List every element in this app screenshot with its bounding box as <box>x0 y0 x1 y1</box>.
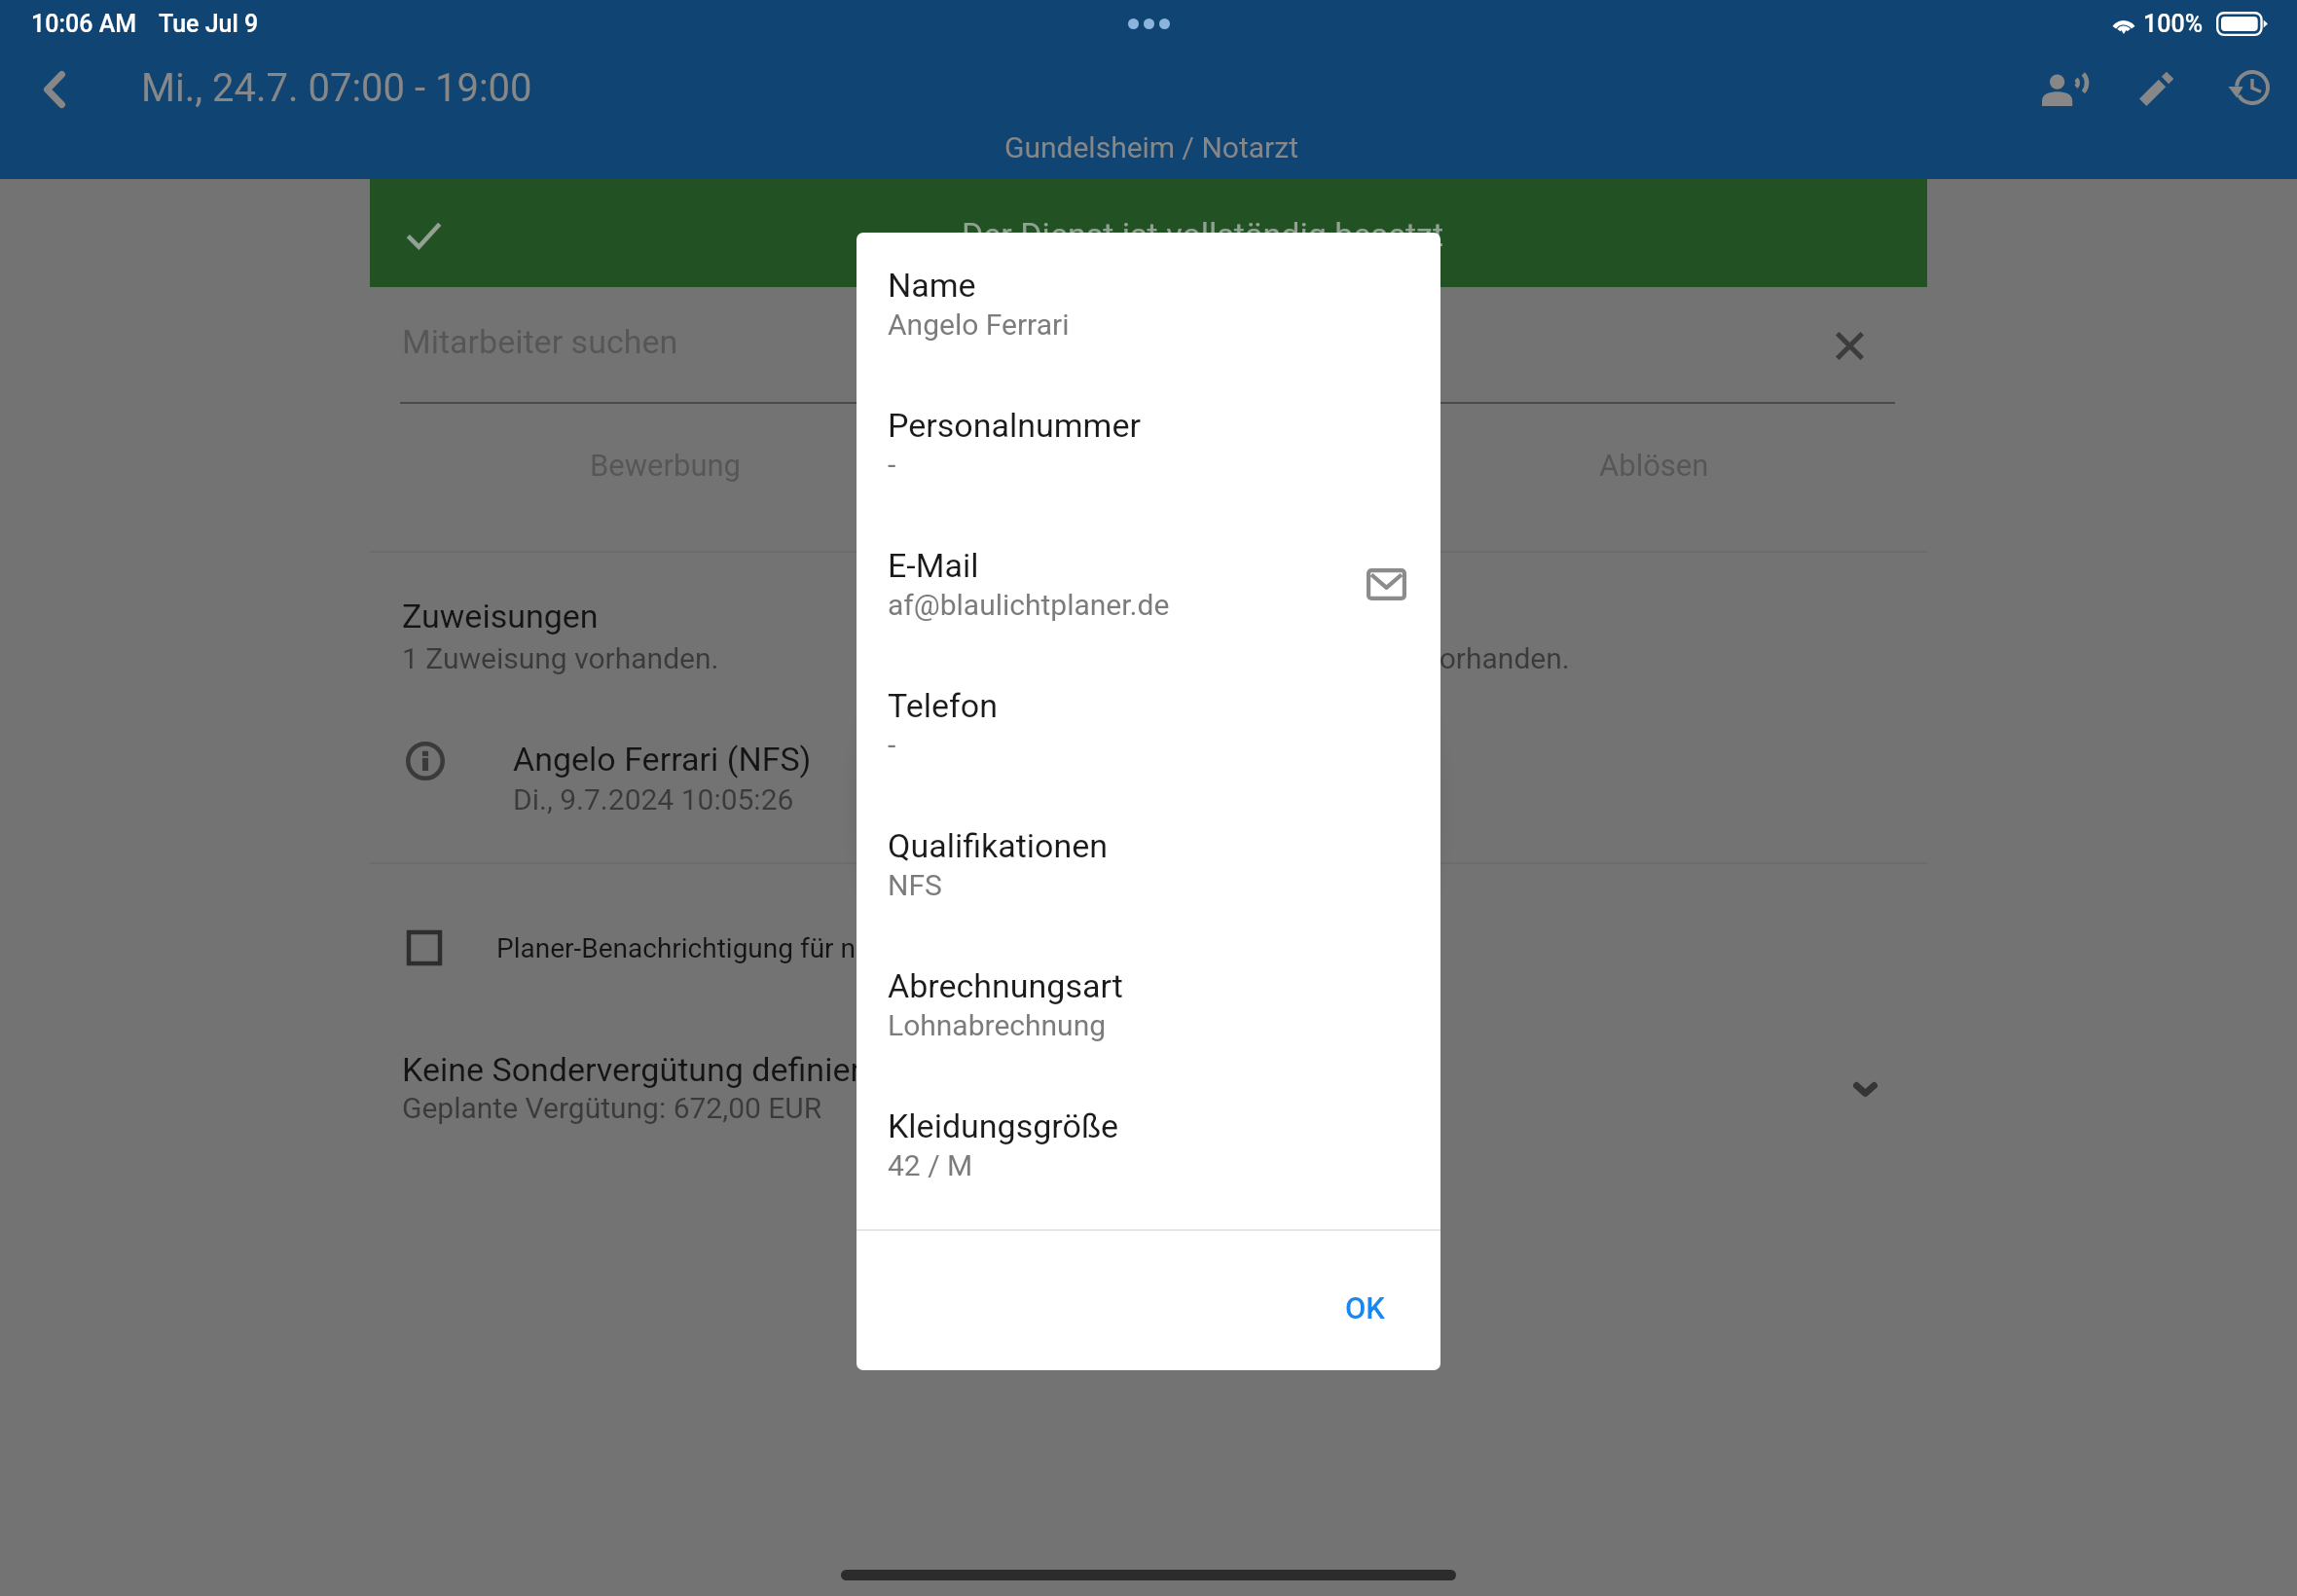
button[interactable]: Back <box>14 49 95 130</box>
staticText: Ablösen <box>1599 448 1709 483</box>
staticText: Qualifikationen <box>888 826 1109 865</box>
staticText: OK <box>1345 1290 1385 1325</box>
button[interactable]: Kleidungsgröße <box>857 1106 1440 1227</box>
staticText: Personalnummer <box>888 406 1141 445</box>
button[interactable]: Name <box>857 266 1440 386</box>
staticText: NFS <box>888 868 942 902</box>
staticText: - <box>888 728 896 762</box>
button[interactable]: Planer-Benachrichtigung für nächsten Die… <box>380 900 1548 997</box>
button[interactable]: Send email <box>1345 543 1427 625</box>
staticText: Di., 9.7.2024 10:05:26 <box>513 782 794 816</box>
staticText: Gundelsheim / Notarzt <box>1004 130 1298 164</box>
button[interactable]: Qualifikationen <box>857 826 1440 947</box>
button[interactable]: OK <box>1303 1269 1426 1347</box>
staticText: Angelo Ferrari (NFS) <box>513 740 812 779</box>
staticText: Kleidungsgröße <box>888 1106 1119 1145</box>
staticText: Keine Zuweisung vorhanden. <box>1197 641 1570 675</box>
button[interactable]: Bewerbung <box>402 412 1148 538</box>
staticText: af@blaulichtplaner.de <box>888 588 1170 622</box>
button[interactable]: Ablösen <box>1148 412 1895 538</box>
staticText: 42 / M <box>888 1148 973 1182</box>
staticText: E-Mail <box>888 546 979 585</box>
button[interactable]: Telefon <box>857 686 1440 807</box>
staticText: 1 Zuweisung vorhanden. <box>402 641 719 675</box>
staticText: Keine Sondervergütung definiert <box>402 1050 873 1089</box>
button[interactable]: Der Dienst ist vollständig besetzt <box>370 179 1927 287</box>
button[interactable]: History <box>2208 47 2290 128</box>
button[interactable]: Keine Sondervergütung definiert <box>370 1012 1927 1168</box>
staticText: 100% <box>2143 10 2204 38</box>
staticText: Zuweisungen <box>402 597 599 635</box>
button[interactable]: Personalnummer <box>857 406 1440 526</box>
button[interactable]: Clear search <box>1808 305 1890 386</box>
button[interactable]: Angelo Ferrari (NFS) <box>389 720 1148 827</box>
staticText: Mitarbeiter suchen <box>402 322 678 361</box>
staticText: Geplante Vergütung: 672,00 EUR <box>402 1091 822 1125</box>
button[interactable]: Abrechnungsart <box>857 966 1440 1087</box>
button[interactable]: Notify employees <box>2023 47 2104 128</box>
button[interactable]: Expand <box>1824 1048 1906 1130</box>
staticText: Telefon <box>888 686 998 725</box>
button[interactable]: E-Mail <box>857 546 1440 667</box>
button[interactable]: Edit <box>2116 47 2198 128</box>
staticText: Tue Jul 9 <box>159 10 259 38</box>
staticText: Mi., 24.7. 07:00 - 19:00 <box>141 65 532 111</box>
staticText: Lohnabrechnung <box>888 1008 1107 1042</box>
staticText: - <box>888 448 896 482</box>
staticText: Angelo Ferrari <box>888 308 1070 342</box>
staticText: Planer-Benachrichtigung für nächsten Die… <box>496 932 1076 964</box>
staticText: 10:06 AM <box>31 10 137 38</box>
staticText: Name <box>888 266 976 305</box>
staticText: Abrechnungsart <box>888 966 1123 1005</box>
staticText: Der Dienst ist vollständig besetzt <box>962 215 1444 254</box>
staticText: Bewerbung <box>590 448 742 483</box>
